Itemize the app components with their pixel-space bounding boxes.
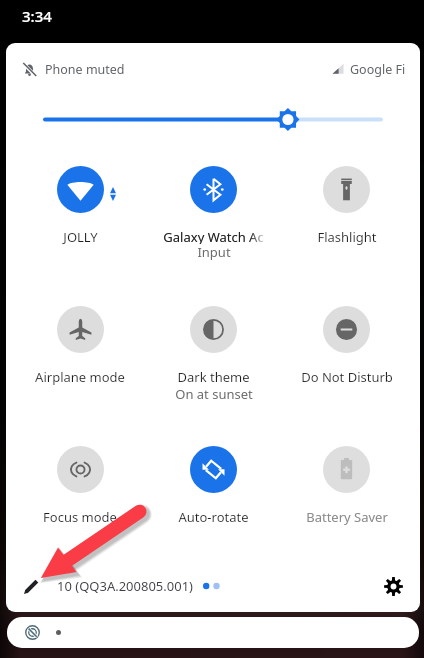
staticText: Input [197, 243, 231, 261]
staticText: JOLLY [63, 228, 98, 246]
button[interactable]: Focus mode [13, 427, 147, 567]
button[interactable]: Airplane mode [13, 287, 147, 427]
button[interactable]: Auto-rotate [147, 427, 280, 567]
staticText: Dark theme [177, 368, 250, 386]
staticText: 10 (QQ3A.200805.001) [57, 577, 193, 595]
staticText: Battery Saver [306, 508, 388, 526]
button[interactable]: Do Not Disturb [280, 287, 413, 427]
button[interactable]: Galaxy Watch Ac [147, 147, 280, 287]
staticText: Flashlight [317, 228, 377, 246]
staticText: On at sunset [175, 385, 253, 403]
button[interactable]: Settings [376, 569, 410, 603]
button[interactable]: Flashlight [280, 147, 413, 287]
staticText: Galaxy Watch Ac [163, 228, 264, 244]
staticText: 3:34 [22, 6, 52, 26]
staticText: Airplane mode [35, 368, 125, 386]
button[interactable]: Edit tiles [15, 570, 48, 603]
staticText: Focus mode [43, 508, 117, 526]
button[interactable]: Dark theme [147, 287, 280, 427]
staticText: Phone muted [45, 61, 125, 78]
staticText: Google Fi [350, 61, 406, 78]
button[interactable]: Battery Saver [280, 427, 413, 567]
staticText: Auto-rotate [178, 508, 249, 526]
button[interactable]: JOLLY [13, 147, 147, 287]
staticText: Do Not Disturb [301, 368, 393, 386]
